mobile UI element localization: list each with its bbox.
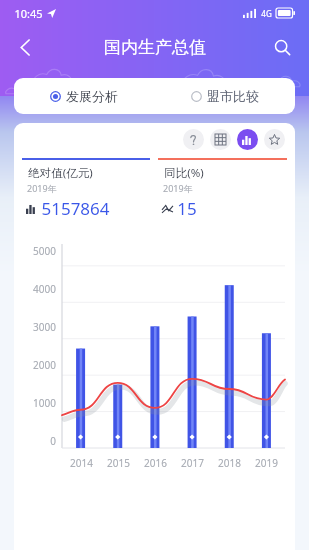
staticText: 2016 <box>144 456 167 470</box>
staticText: 0 <box>50 434 56 448</box>
staticText: 国内生产总值 <box>104 37 206 58</box>
button[interactable]: 同比(%) <box>158 158 287 224</box>
button[interactable]: Back <box>8 30 42 64</box>
button[interactable]: Chart view <box>237 129 258 150</box>
staticText: 5000 <box>33 244 56 258</box>
staticText: 发展分析 <box>66 88 118 104</box>
staticText: 2014 <box>70 456 93 470</box>
staticText: 同比(%) <box>158 165 204 181</box>
button[interactable]: Favorite <box>264 129 285 150</box>
staticText: 2019 <box>255 456 278 470</box>
staticText: 15 <box>177 197 197 220</box>
staticText: 2019年 <box>22 182 57 194</box>
staticText: 2017 <box>181 456 204 470</box>
staticText: 2015 <box>107 456 130 470</box>
button[interactable]: 盟市比较 <box>154 78 295 114</box>
staticText: 4G <box>261 8 272 19</box>
staticText: 2000 <box>33 358 56 372</box>
button[interactable]: 绝对值(亿元) <box>22 158 150 224</box>
button[interactable]: Help <box>183 129 204 150</box>
staticText: 10:45 <box>14 6 43 21</box>
staticText: 3000 <box>33 320 56 334</box>
staticText: 4000 <box>33 282 56 296</box>
button[interactable]: 发展分析 <box>14 78 154 114</box>
button[interactable]: Search <box>265 30 299 64</box>
staticText: 2018 <box>218 456 241 470</box>
staticText: 绝对值(亿元) <box>22 165 93 181</box>
button[interactable]: Table view <box>210 129 231 150</box>
staticText: 5157864 <box>41 197 110 220</box>
staticText: 2019年 <box>158 182 193 194</box>
staticText: 1000 <box>33 396 56 410</box>
staticText: 盟市比较 <box>207 88 259 104</box>
